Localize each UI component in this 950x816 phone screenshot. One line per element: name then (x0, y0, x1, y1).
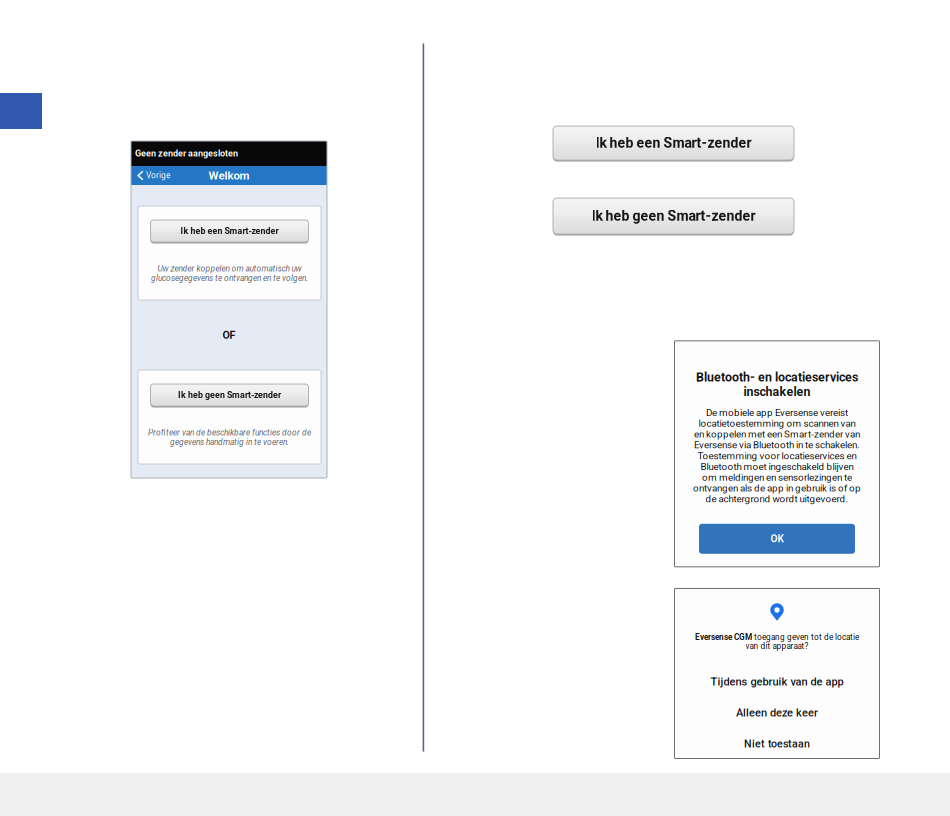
button[interactable]: Vorige (131, 167, 170, 183)
staticText: gegevens handmatig in te voeren. (170, 437, 289, 447)
staticText: OF (222, 329, 235, 341)
staticText: Geen zender aangesloten (135, 148, 238, 159)
button[interactable]: Niet toestaan (674, 736, 879, 752)
staticText: Vorige (146, 171, 170, 180)
staticText: Ik heb geen Smart-zender (591, 208, 755, 224)
button[interactable]: Ik heb een Smart-zender (150, 220, 308, 244)
button[interactable]: Alleen deze keer (674, 705, 879, 721)
staticText: Bluetooth- en locatieservices (696, 370, 858, 384)
staticText: Niet toestaan (744, 737, 810, 750)
staticText: inschakelen (743, 385, 810, 399)
button[interactable]: Ik heb geen Smart-zender (553, 198, 794, 236)
staticText: en koppelen met een Smart-zender van (694, 428, 860, 440)
button[interactable]: OK (699, 524, 855, 554)
staticText: Ik heb een Smart-zender (595, 135, 751, 151)
staticText: ontvangen als de app in gebruik is of op (693, 482, 861, 494)
staticText: Alleen deze keer (736, 706, 818, 719)
staticText: Bluetooth moet ingeschakeld blijven (700, 461, 853, 472)
staticText: Uw zender koppelen om automatisch uw (157, 264, 301, 274)
staticText: de achtergrond wordt uitgevoerd. (705, 493, 848, 505)
staticText: Ik heb een Smart-zender (180, 226, 278, 236)
staticText: OK (770, 533, 783, 545)
staticText: Welkom (208, 169, 249, 182)
staticText: Ik heb geen Smart-zender (178, 390, 281, 400)
button[interactable]: Ik heb geen Smart-zender (150, 384, 308, 408)
button[interactable]: Ik heb een Smart-zender (553, 126, 794, 162)
staticText: locatietoestemming om scannen van (698, 418, 855, 429)
staticText: De mobiele app Eversense vereist (706, 407, 848, 418)
staticText: van dit apparaat? (745, 641, 808, 651)
button[interactable]: Tijdens gebruik van de app (674, 674, 879, 690)
staticText: Profiteer van de beschikbare functies do… (148, 428, 311, 438)
staticText: Toestemming voor locatieservices en (697, 450, 856, 462)
staticText: Tijdens gebruik van de app (710, 675, 843, 688)
staticText: glucosegegevens te ontvangen en te volge… (151, 273, 308, 283)
staticText: Eversense CGM toegang geven tot de locat… (695, 632, 859, 642)
staticText: om meldingen en sensorlezingen te (702, 472, 852, 483)
staticText: Eversense via Bluetooth in te schakelen. (694, 439, 860, 451)
